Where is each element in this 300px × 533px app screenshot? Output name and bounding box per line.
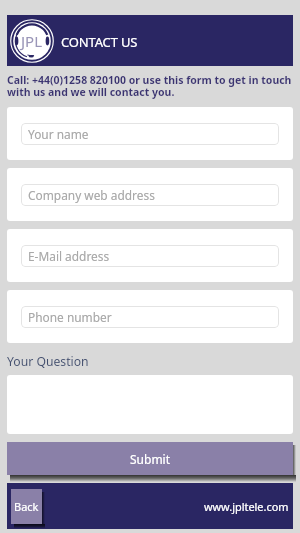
staticText: JPL	[21, 31, 43, 51]
staticText: Call: +44(0)1258 820100 or use this form…	[7, 73, 293, 99]
staticText: Company web address	[28, 187, 155, 203]
staticText: CONTACT US	[61, 33, 138, 51]
button[interactable]: Phone number	[21, 306, 279, 328]
staticText: Back	[14, 499, 39, 514]
staticText: www.jpltele.com	[204, 499, 289, 514]
button[interactable]: Back	[11, 489, 42, 524]
staticText: Your Question	[7, 353, 89, 370]
button[interactable]: E-Mail address	[21, 245, 279, 267]
staticText: Your name	[28, 126, 89, 142]
staticText: Phone number	[28, 309, 112, 325]
button[interactable]: Company web address	[21, 184, 279, 206]
button[interactable]: Submit	[7, 442, 293, 475]
staticText: Submit	[130, 451, 171, 467]
button[interactable]: Your name	[21, 123, 279, 145]
staticText: E-Mail address	[28, 248, 110, 264]
